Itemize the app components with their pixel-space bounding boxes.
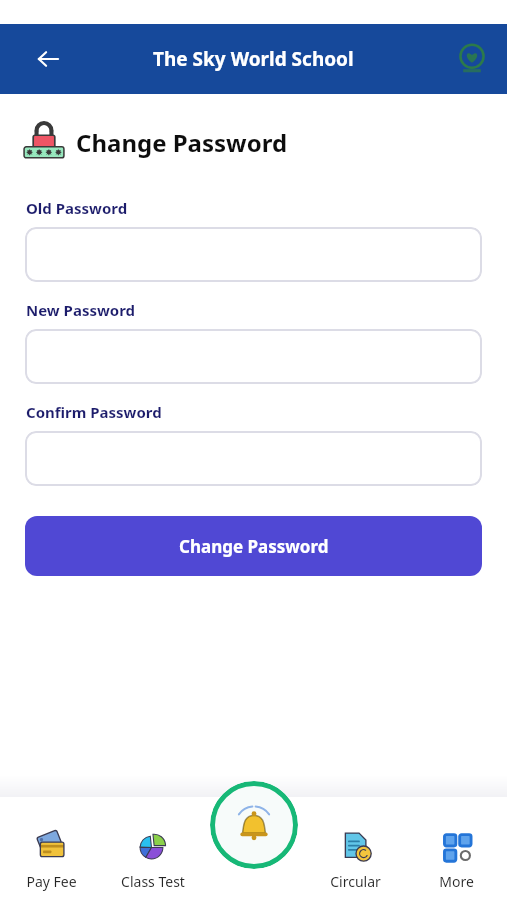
button[interactable]: School logo bbox=[454, 41, 490, 77]
staticText: Pay Fee bbox=[26, 872, 77, 891]
staticText: Confirm Password bbox=[26, 402, 162, 422]
staticText: Change Password bbox=[76, 126, 288, 159]
button[interactable]: New Password bbox=[25, 329, 482, 384]
staticText: Circular bbox=[330, 872, 381, 891]
staticText: The Sky World School bbox=[153, 46, 354, 72]
button[interactable]: Pay Fee bbox=[0, 797, 102, 900]
staticText: Old Password bbox=[26, 198, 128, 218]
button[interactable]: Notifications bbox=[210, 781, 298, 869]
button[interactable]: Old Password bbox=[25, 227, 482, 282]
button[interactable]: Change Password bbox=[25, 516, 482, 576]
button[interactable]: More bbox=[406, 797, 507, 900]
staticText: Class Test bbox=[121, 872, 185, 891]
button[interactable]: Confirm Password bbox=[25, 431, 482, 486]
button[interactable]: Circular bbox=[305, 797, 406, 900]
staticText: More bbox=[439, 872, 474, 891]
button[interactable]: Class Test bbox=[102, 797, 204, 900]
button[interactable]: Back bbox=[28, 39, 68, 79]
staticText: New Password bbox=[26, 300, 136, 320]
staticText: Change Password bbox=[179, 535, 329, 558]
